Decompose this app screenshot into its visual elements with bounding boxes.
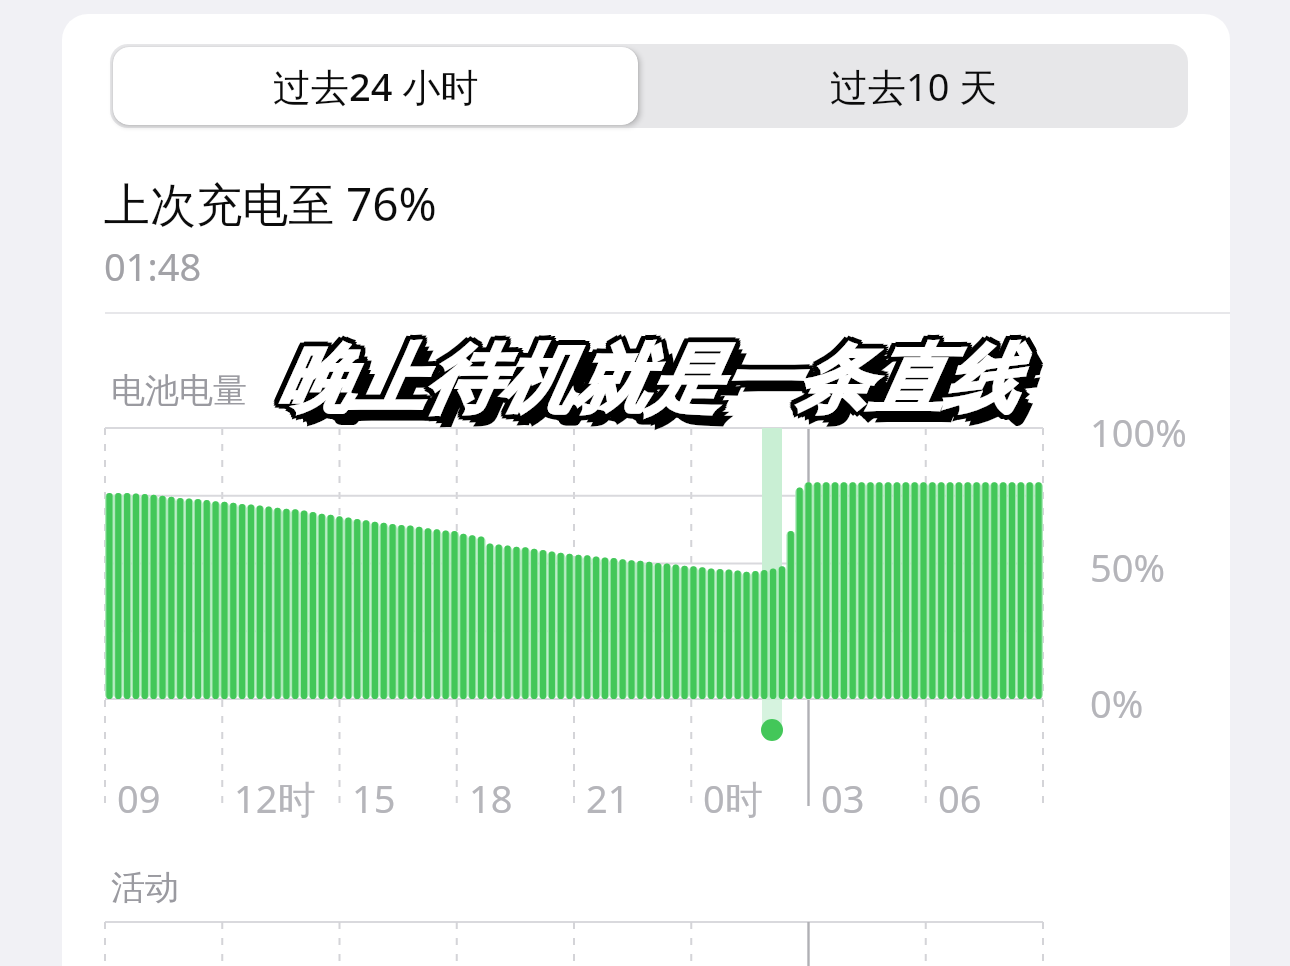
staticText: 06 <box>938 772 982 824</box>
staticText: 18 <box>469 772 513 824</box>
staticText: 09 <box>117 772 161 824</box>
staticText: 晚上待机就是一条直线 <box>281 334 1021 427</box>
staticText: 晚上待机就是一条直线 <box>272 338 1012 431</box>
staticText: 过去24 小时 <box>273 60 479 112</box>
staticText: 晚上待机就是一条直线 <box>271 336 1011 429</box>
staticText: 21 <box>586 772 630 824</box>
staticText: 晚上待机就是一条直线 <box>287 345 1027 438</box>
staticText: 晚上待机就是一条直线 <box>276 334 1016 427</box>
staticText: 15 <box>352 772 396 824</box>
staticText: 03 <box>821 772 865 824</box>
staticText: 晚上待机就是一条直线 <box>271 332 1011 425</box>
staticText: 上次充电至 76% <box>104 172 437 235</box>
staticText: 晚上待机就是一条直线 <box>271 334 1011 427</box>
staticText: 0% <box>1090 677 1144 729</box>
staticText: 50% <box>1090 541 1166 593</box>
staticText: 过去10 天 <box>830 60 998 112</box>
staticText: 电池电量 <box>111 369 247 412</box>
button[interactable]: 过去24 小时 <box>113 47 638 125</box>
staticText: 晚上待机就是一条直线 <box>283 341 1023 434</box>
staticText: 晚上待机就是一条直线 <box>272 330 1012 423</box>
button[interactable]: 过去10 天 <box>640 44 1188 128</box>
staticText: 晚上待机就是一条直线 <box>276 329 1016 422</box>
staticText: 活动 <box>111 866 179 909</box>
other: Battery level chart for the last 24 hour… <box>0 0 1290 966</box>
staticText: 晚上待机就是一条直线 <box>281 336 1021 429</box>
staticText: 100% <box>1090 406 1187 458</box>
staticText: 晚上待机就是一条直线 <box>280 338 1020 431</box>
staticText: 01:48 <box>104 240 202 292</box>
staticText: 晚上待机就是一条直线 <box>280 330 1020 423</box>
staticText: 晚上待机就是一条直线 <box>281 332 1021 425</box>
staticText: 0时 <box>703 772 763 824</box>
staticText: 12时 <box>234 772 316 824</box>
staticText: 晚上待机就是一条直线 <box>276 339 1016 432</box>
